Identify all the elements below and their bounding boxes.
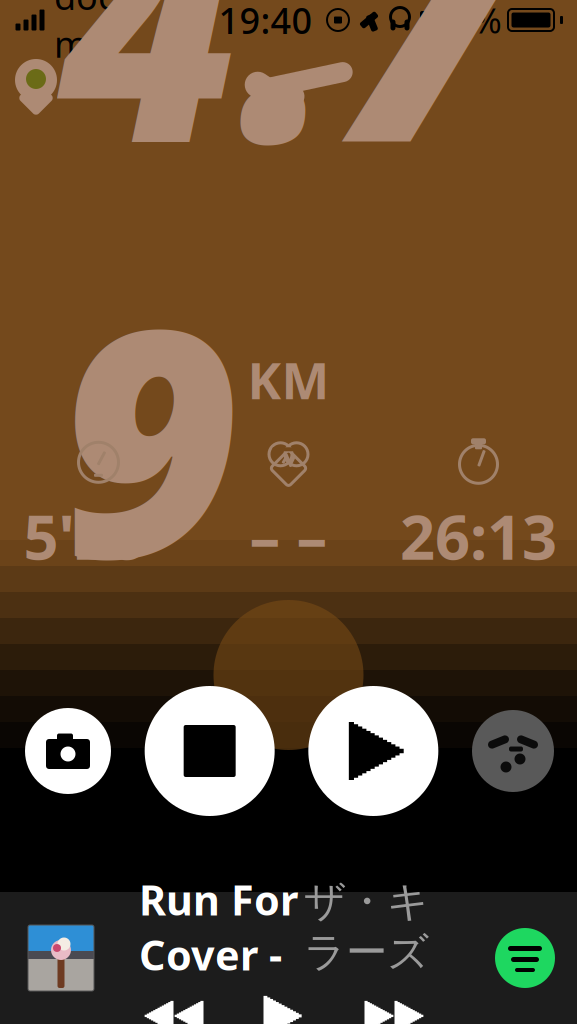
button[interactable]: Next track: [356, 991, 434, 1024]
button[interactable]: Music: [472, 710, 554, 792]
staticText: ザ・キラーズ: [304, 876, 429, 978]
button[interactable]: Album artwork: [0, 925, 104, 991]
button[interactable]: Previous track: [134, 991, 212, 1024]
button[interactable]: Open Spotify: [495, 928, 577, 988]
staticText: 19:40: [218, 0, 312, 44]
button[interactable]: Play: [250, 986, 318, 1024]
staticText: – –: [249, 495, 327, 577]
button[interactable]: Take photo: [25, 708, 111, 794]
staticText: Run For Cover -: [139, 872, 298, 982]
button[interactable]: GPS signal: [0, 52, 72, 120]
staticText: KM: [247, 346, 329, 413]
staticText: 5'28": [23, 495, 173, 577]
staticText: 3G: [161, 0, 204, 42]
button[interactable]: Resume run: [308, 686, 438, 816]
staticText: 92%: [433, 0, 502, 43]
staticText: 26:13: [400, 495, 557, 577]
staticText: 4.79: [58, 0, 518, 644]
staticText: docomo: [54, 0, 149, 68]
button[interactable]: Stop run: [145, 686, 275, 816]
